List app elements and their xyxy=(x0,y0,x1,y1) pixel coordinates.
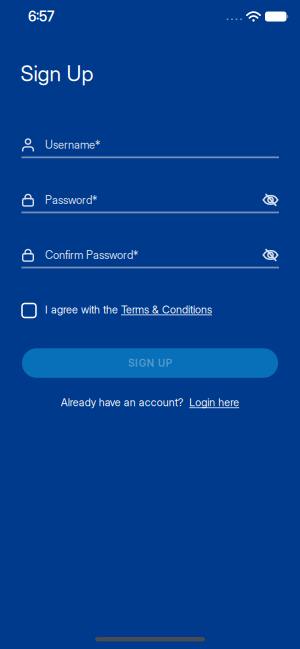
button[interactable] xyxy=(262,192,279,207)
button[interactable] xyxy=(22,302,36,316)
staticText: Confirm Password* xyxy=(45,248,138,262)
staticText: G xyxy=(139,357,146,369)
button[interactable]: Login here xyxy=(189,396,239,409)
staticText: Already have an account? xyxy=(61,396,187,409)
staticText: Terms & Conditions xyxy=(121,303,212,316)
staticText: 6:57 xyxy=(28,8,54,25)
staticText: Password* xyxy=(45,193,97,207)
staticText: U xyxy=(158,357,165,369)
staticText: Username* xyxy=(45,138,100,152)
staticText: I xyxy=(135,357,138,369)
staticText: P xyxy=(166,357,172,369)
staticText: N xyxy=(147,357,154,369)
staticText: Sign Up xyxy=(20,61,93,86)
staticText: I agree with the xyxy=(45,303,121,316)
staticText: S xyxy=(128,357,134,369)
button[interactable]: Terms & Conditions xyxy=(121,303,212,316)
button[interactable]: S xyxy=(22,348,278,378)
button[interactable] xyxy=(262,247,279,262)
staticText: Login here xyxy=(189,396,239,409)
